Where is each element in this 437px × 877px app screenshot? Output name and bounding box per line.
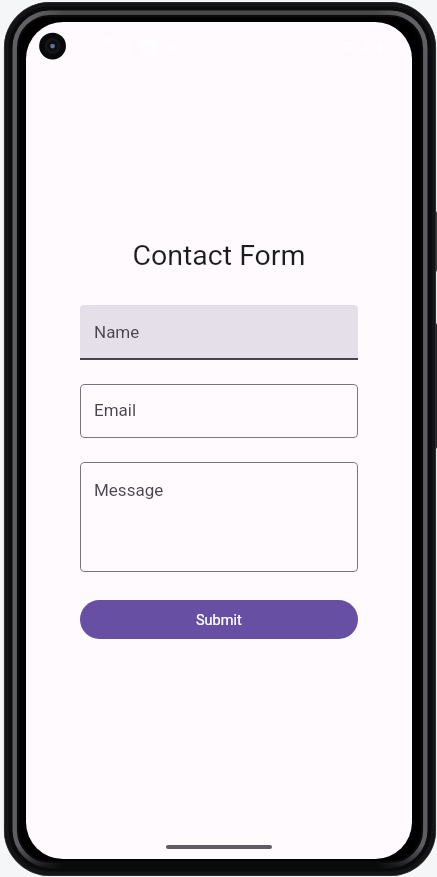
button[interactable]: Submit [80,600,358,639]
staticText: Submit [196,612,242,629]
button[interactable]: Email [80,384,358,438]
staticText: Name [94,322,140,342]
button[interactable]: Message [80,462,358,572]
staticText: Email [94,400,137,420]
staticText: Message [94,480,164,500]
button[interactable]: Name [80,305,358,360]
other: Status bar [26,22,412,64]
staticText: Contact Form [80,239,358,272]
